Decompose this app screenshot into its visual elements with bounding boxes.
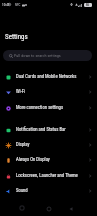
- button[interactable]: Display: [0, 137, 97, 153]
- button[interactable]: Back: [63, 201, 79, 216]
- staticText: Always On Display: [16, 157, 88, 163]
- staticText: More connection settings: [16, 105, 88, 111]
- button[interactable]: Dual Cards and Mobile Networks: [0, 69, 97, 85]
- button[interactable]: More connection settings: [0, 100, 97, 116]
- button[interactable]: Recents: [14, 200, 30, 216]
- staticText: 10:41: [2, 3, 10, 7]
- staticText: Lockscreen, Launcher and Theme: [16, 173, 88, 179]
- staticText: Settings: [5, 33, 28, 41]
- button[interactable]: Wi-Fi: [0, 84, 97, 100]
- button[interactable]: Notification and Status Bar: [0, 122, 97, 138]
- staticText: Sound: [16, 188, 88, 194]
- button[interactable]: Home: [41, 201, 57, 216]
- staticText: Dual Cards and Mobile Networks: [16, 74, 88, 80]
- staticText: Notification and Status Bar: [16, 127, 88, 133]
- staticText: 86: [86, 3, 90, 7]
- button[interactable]: Always On Display: [0, 152, 97, 168]
- button[interactable]: Sound: [0, 183, 97, 199]
- staticText: Pull down to search settings: [14, 53, 61, 58]
- staticText: Wi-Fi: [16, 89, 88, 95]
- button[interactable]: Lockscreen, Launcher and Theme: [0, 168, 97, 184]
- button[interactable]: Pull down to search settings: [3, 50, 92, 61]
- staticText: Display: [16, 142, 88, 148]
- staticText: NFC: [15, 3, 21, 7]
